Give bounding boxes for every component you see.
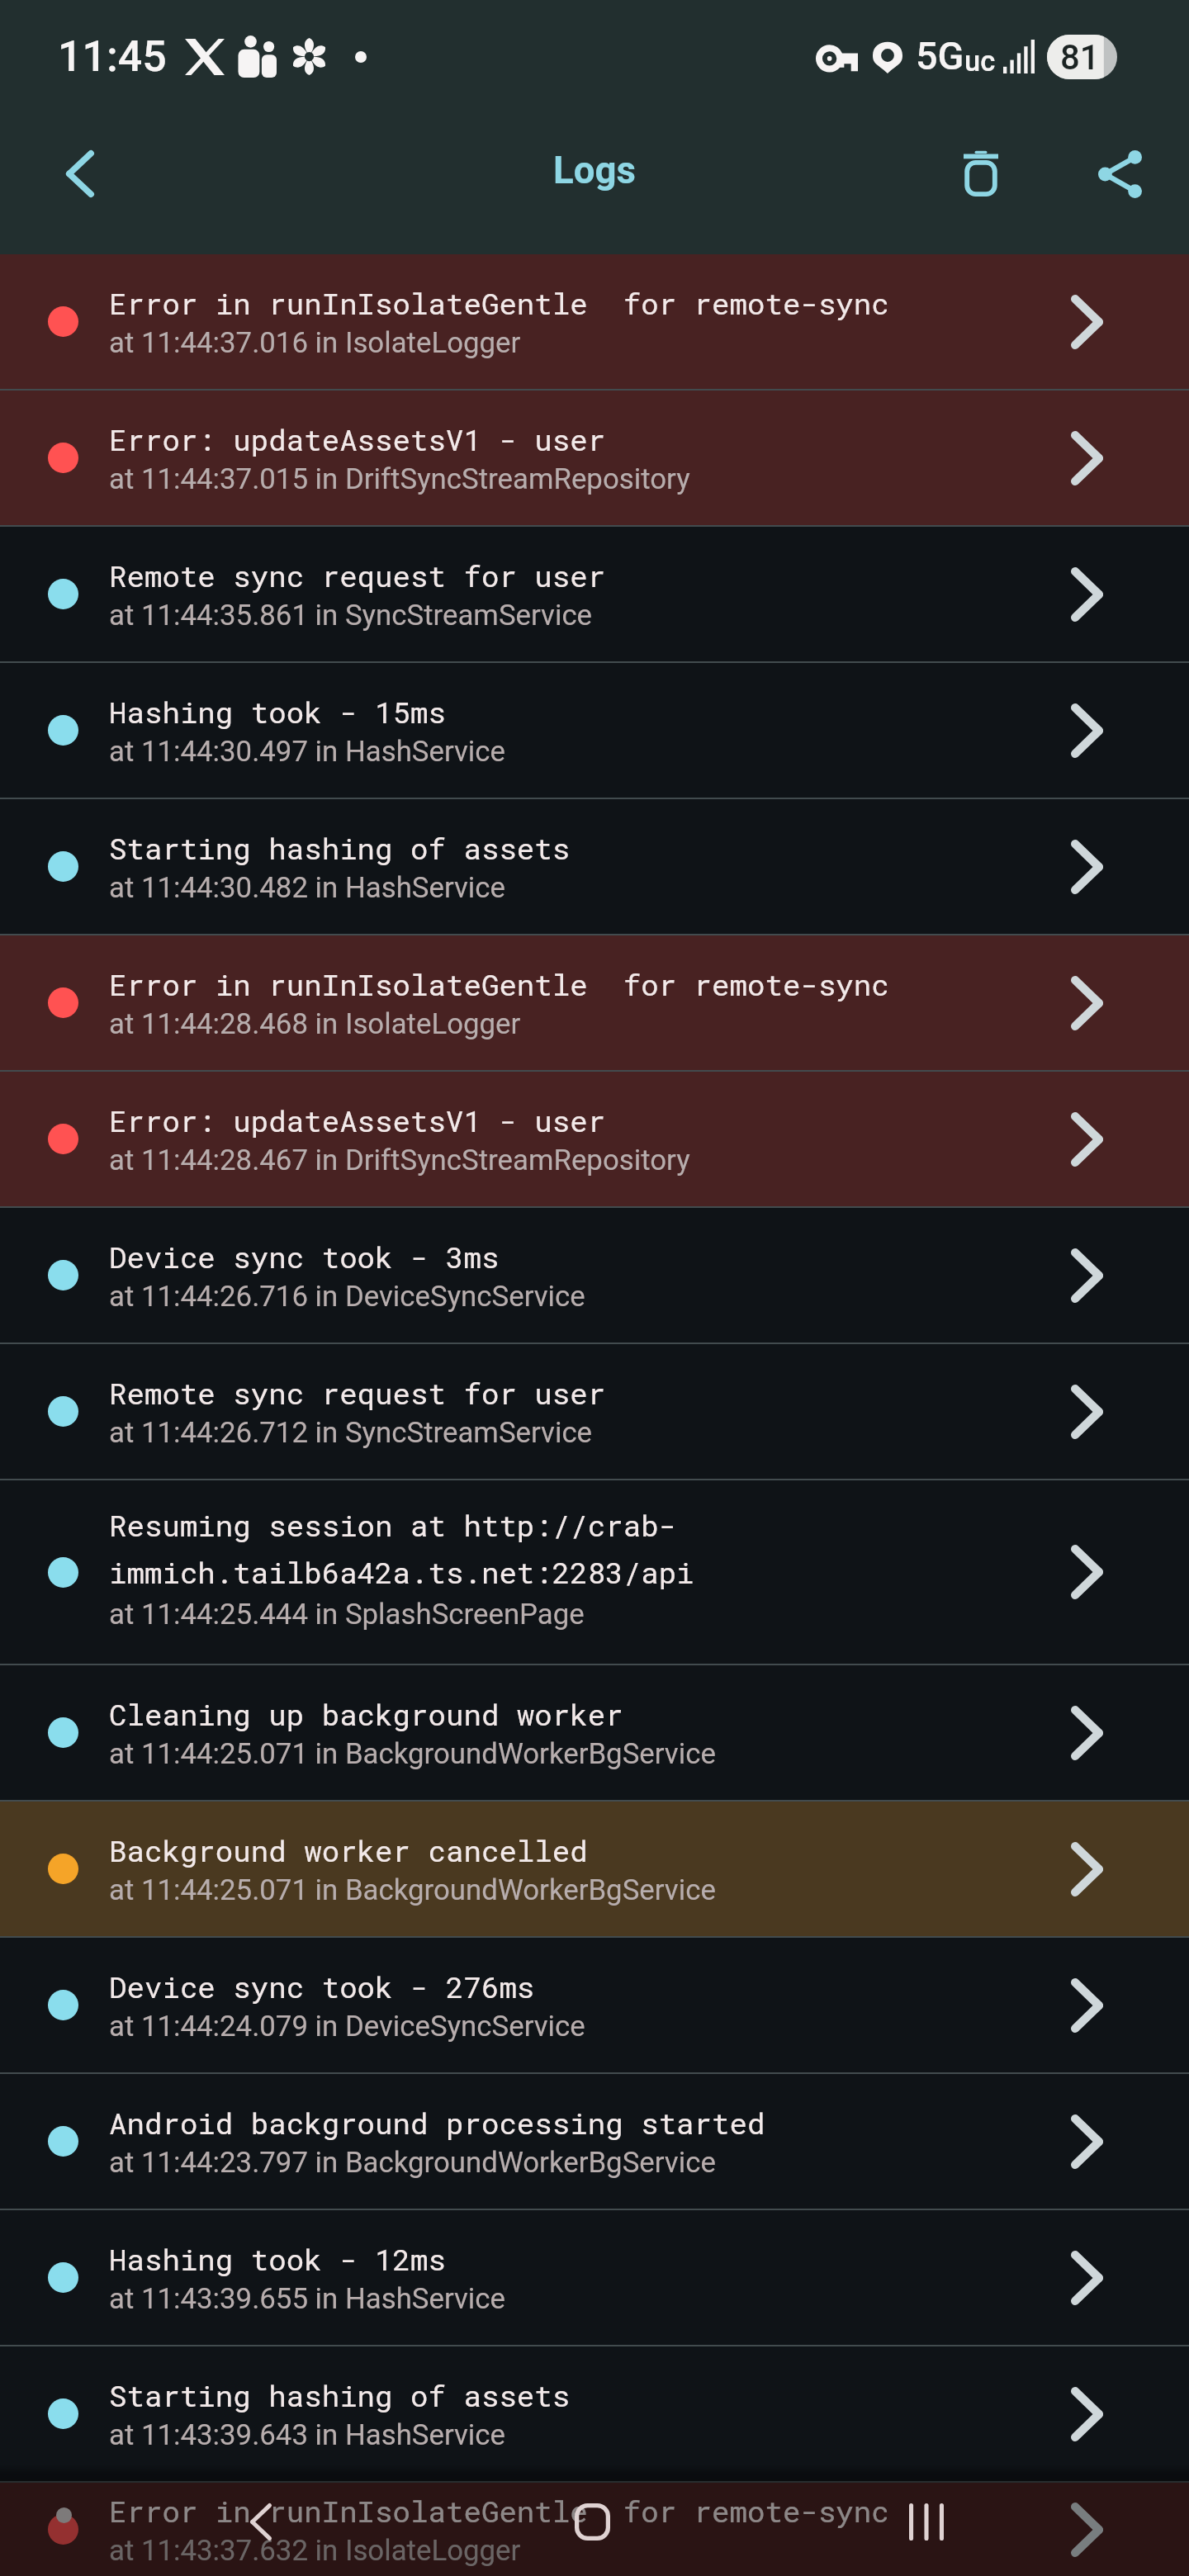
staticText: Cleaning up background worker: [109, 1694, 623, 1733]
button[interactable]: Error in runInIsolateGentle for remote-s…: [0, 254, 1189, 389]
button[interactable]: Back: [11, 107, 149, 240]
button[interactable]: Background worker cancelled: [0, 1802, 1189, 1936]
button[interactable]: Remote sync request for user: [0, 1344, 1189, 1479]
button[interactable]: Recent apps: [862, 2464, 991, 2576]
staticText: at 11:44:25.444 in SplashScreenPage: [109, 1598, 585, 1631]
staticText: uc: [964, 45, 996, 78]
staticText: Error in runInIsolateGentle for remote-s…: [109, 2491, 889, 2530]
staticText: at 11:44:25.071 in BackgroundWorkerBgSer…: [109, 1873, 716, 1907]
staticText: Error: updateAssetsV1 - user: [109, 1101, 606, 1139]
staticText: Hashing took - 15ms: [109, 692, 446, 731]
button[interactable]: Share logs: [1050, 107, 1189, 240]
staticText: Android background processing started: [109, 2103, 765, 2142]
staticText: Device sync took - 276ms: [109, 1967, 535, 2005]
staticText: at 11:44:24.079 in DeviceSyncService: [109, 2010, 585, 2043]
staticText: at 11:44:26.716 in DeviceSyncService: [109, 1280, 585, 1314]
button[interactable]: Android background processing started: [0, 2074, 1189, 2209]
staticText: at 11:44:30.497 in HashService: [109, 735, 505, 769]
staticText: Error in runInIsolateGentle for remote-s…: [109, 964, 889, 1003]
staticText: at 11:44:25.071 in BackgroundWorkerBgSer…: [109, 1737, 716, 1771]
staticText: Hashing took - 12ms: [109, 2239, 446, 2278]
staticText: at 11:44:28.468 in IsolateLogger: [109, 1007, 521, 1041]
staticText: Error in runInIsolateGentle for remote-s…: [109, 283, 889, 322]
staticText: 81: [1060, 37, 1100, 78]
button[interactable]: Starting hashing of assets: [0, 2346, 1189, 2481]
button[interactable]: Starting hashing of assets: [0, 799, 1189, 934]
button[interactable]: Hashing took - 12ms: [0, 2210, 1189, 2345]
button[interactable]: Device sync took - 3ms: [0, 1208, 1189, 1342]
staticText: Background worker cancelled: [109, 1830, 588, 1869]
staticText: at 11:44:23.797 in BackgroundWorkerBgSer…: [109, 2146, 716, 2180]
staticText: Resuming session at http://crab- immich.…: [109, 1505, 694, 1592]
staticText: Starting hashing of assets: [109, 828, 571, 867]
button[interactable]: Error in runInIsolateGentle for remote-s…: [0, 935, 1189, 1070]
staticText: Remote sync request for user: [109, 556, 606, 594]
button[interactable]: Delete logs: [912, 107, 1050, 240]
staticText: at 11:44:37.015 in DriftSyncStreamReposi…: [109, 462, 690, 496]
staticText: at 11:43:39.643 in HashService: [109, 2418, 505, 2452]
button[interactable]: Error in runInIsolateGentle for remote-s…: [0, 2483, 1189, 2576]
button[interactable]: Cleaning up background worker: [0, 1665, 1189, 1800]
staticText: at 11:43:39.655 in HashService: [109, 2282, 505, 2316]
staticText: Device sync took - 3ms: [109, 1237, 500, 1276]
button[interactable]: Resuming session at http://crab- immich.…: [0, 1480, 1189, 1664]
staticText: at 11:44:35.861 in SyncStreamService: [109, 599, 593, 632]
button[interactable]: Error: updateAssetsV1 - user: [0, 1072, 1189, 1206]
staticText: at 11:44:26.712 in SyncStreamService: [109, 1416, 593, 1450]
button[interactable]: Error: updateAssetsV1 - user: [0, 391, 1189, 525]
staticText: Remote sync request for user: [109, 1373, 606, 1412]
staticText: Error: updateAssetsV1 - user: [109, 419, 606, 458]
staticText: at 11:44:28.467 in DriftSyncStreamReposi…: [109, 1144, 690, 1177]
button[interactable]: Remote sync request for user: [0, 527, 1189, 661]
staticText: 11:45: [58, 31, 167, 82]
staticText: 5G: [916, 34, 964, 79]
button[interactable]: Home: [528, 2464, 656, 2576]
staticText: Logs: [553, 149, 636, 192]
staticText: at 11:44:30.482 in HashService: [109, 871, 505, 905]
button[interactable]: Hashing took - 15ms: [0, 663, 1189, 798]
staticText: at 11:43:37.632 in IsolateLogger: [109, 2534, 521, 2568]
staticText: Starting hashing of assets: [109, 2375, 571, 2414]
button[interactable]: Device sync took - 276ms: [0, 1938, 1189, 2072]
staticText: at 11:44:37.016 in IsolateLogger: [109, 326, 521, 360]
button[interactable]: Back: [197, 2464, 325, 2576]
